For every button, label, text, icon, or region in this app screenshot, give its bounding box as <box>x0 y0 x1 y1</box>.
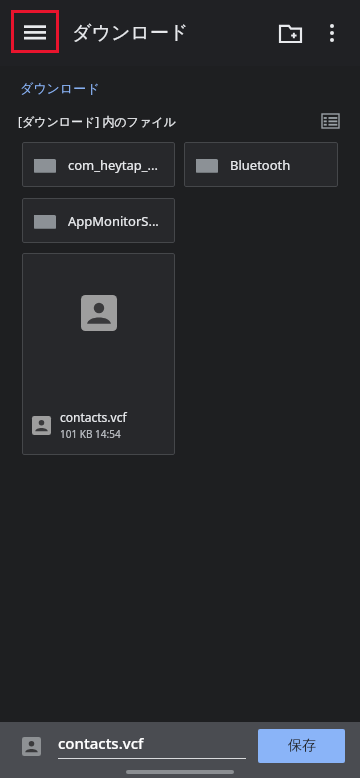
button[interactable]: AppMonitorS... <box>22 198 175 243</box>
staticText: Bluetooth <box>230 156 291 174</box>
button[interactable]: contacts.vcf <box>22 253 175 455</box>
staticText: 保存 <box>288 737 316 755</box>
button[interactable]: List view <box>314 105 346 137</box>
button[interactable]: com_heytap_... <box>22 142 175 187</box>
button[interactable]: More options <box>312 13 352 53</box>
staticText: contacts.vcf <box>60 409 127 425</box>
staticText: contacts.vcf <box>58 733 144 753</box>
staticText: ダウンロード <box>20 80 100 96</box>
staticText: AppMonitorS... <box>68 212 159 230</box>
button[interactable]: Menu <box>11 10 59 53</box>
button[interactable]: ダウンロード <box>18 76 102 100</box>
staticText: ダウンロード <box>72 21 189 45</box>
staticText: com_heytap_... <box>68 156 158 174</box>
staticText: 101 KB 14:54 <box>60 427 121 441</box>
button[interactable]: 保存 <box>258 729 345 763</box>
button[interactable]: Bluetooth <box>184 142 338 187</box>
button[interactable]: contacts.vcf <box>58 733 258 759</box>
button[interactable]: File type <box>17 732 45 760</box>
button[interactable]: New folder <box>272 15 308 51</box>
staticText: [ダウンロード] 内のファイル <box>18 113 176 129</box>
